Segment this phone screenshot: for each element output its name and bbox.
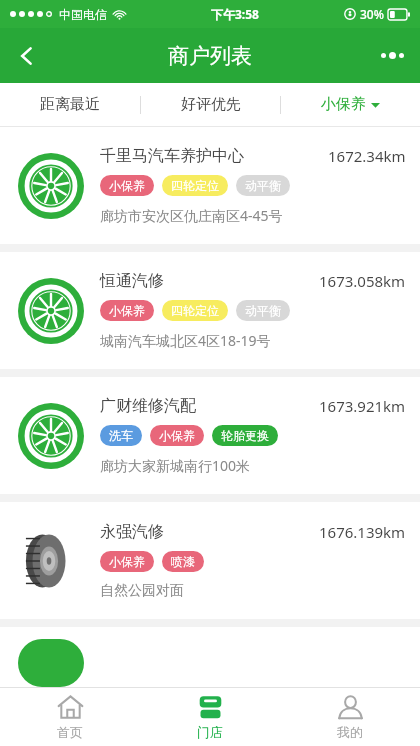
staticText: 广财维修汽配 — [100, 396, 196, 416]
button[interactable]: 好评优先 — [141, 83, 280, 126]
button[interactable]: 千里马汽车养护中心 — [0, 127, 420, 244]
staticText: 四轮定位 — [171, 303, 219, 318]
staticText: 小保养 — [109, 303, 145, 318]
staticText: 廊坊市安次区仇庄南区4-45号 — [100, 206, 283, 225]
staticText: 中国电信 — [59, 7, 107, 22]
staticText: 城南汽车城北区4区18-19号 — [100, 331, 271, 350]
button[interactable]: More options — [364, 28, 420, 83]
button[interactable]: 永强汽修 — [0, 502, 420, 619]
staticText: 小保养 — [109, 178, 145, 193]
staticText: 下午3:58 — [211, 6, 259, 22]
staticText: 1672.34km — [328, 146, 406, 166]
staticText: 1676.139km — [319, 522, 406, 542]
staticText: 永强汽修 — [100, 522, 164, 542]
button[interactable]: 门店 — [140, 688, 280, 746]
staticText: 商户列表 — [168, 43, 252, 69]
staticText: 小保养 — [321, 95, 366, 114]
button[interactable]: 小保养 — [281, 83, 420, 126]
staticText: 喷漆 — [171, 554, 195, 569]
staticText: 四轮定位 — [171, 178, 219, 193]
staticText: 小保养 — [159, 428, 195, 443]
staticText: 好评优先 — [181, 95, 241, 114]
staticText: 洗车 — [109, 428, 133, 443]
staticText: 1673.921km — [319, 396, 406, 416]
staticText: 自然公园对面 — [100, 582, 184, 600]
staticText: 千里马汽车养护中心 — [100, 146, 244, 166]
staticText: 动平衡 — [245, 178, 281, 193]
staticText: 动平衡 — [245, 303, 281, 318]
button[interactable]: 距离最近 — [0, 83, 140, 126]
staticText: 廊坊大家新城南行100米 — [100, 456, 251, 475]
staticText: 门店 — [197, 724, 223, 740]
button[interactable]: 广财维修汽配 — [0, 377, 420, 494]
button[interactable]: 恒通汽修 — [0, 252, 420, 369]
staticText: 首页 — [57, 724, 83, 740]
staticText: 距离最近 — [40, 95, 100, 114]
staticText: 轮胎更换 — [221, 428, 269, 443]
button[interactable]: 首页 — [0, 688, 140, 746]
staticText: 30% — [360, 6, 384, 22]
staticText: 我的 — [337, 724, 363, 740]
staticText: 1673.058km — [319, 271, 406, 291]
staticText: 恒通汽修 — [100, 271, 164, 291]
staticText: 小保养 — [109, 554, 145, 569]
button[interactable]: Back — [0, 28, 54, 83]
button[interactable]: 我的 — [280, 688, 420, 746]
